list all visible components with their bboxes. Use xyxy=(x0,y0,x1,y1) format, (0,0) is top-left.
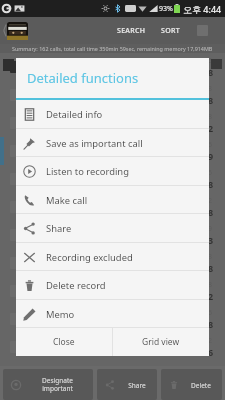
staticText: Recording excluded xyxy=(46,251,133,264)
staticText: Grid view xyxy=(142,336,180,348)
staticText: Detailed info xyxy=(46,108,103,121)
button[interactable]: Save as important call xyxy=(16,129,209,157)
staticText: 2 xyxy=(208,196,213,206)
staticText: Listen to recording xyxy=(46,165,129,178)
staticText: 8 xyxy=(208,94,214,106)
staticText: 5 xyxy=(208,168,213,178)
button[interactable]: Share xyxy=(16,214,209,243)
staticText: 2 xyxy=(208,336,213,346)
staticText: 8 xyxy=(208,318,214,330)
staticText: 93% xyxy=(159,4,173,14)
staticText: Share xyxy=(46,222,72,235)
staticText: 8 xyxy=(208,280,213,290)
button[interactable]: Make call xyxy=(16,186,209,214)
button[interactable]: Recording excluded xyxy=(16,243,209,271)
staticText: 2 xyxy=(208,122,214,134)
button[interactable]: Grid view xyxy=(113,328,209,356)
staticText: Summary: 162 calls, total call time 350m… xyxy=(12,45,213,52)
staticText: 2 xyxy=(208,290,214,302)
button[interactable]: Share xyxy=(97,369,157,400)
staticText: 6 xyxy=(208,140,213,150)
staticText: 3 xyxy=(208,252,213,262)
staticText: 6 xyxy=(208,346,214,358)
staticText: 3 xyxy=(208,234,214,246)
staticText: Make call xyxy=(46,194,88,207)
staticText: 8 xyxy=(208,112,213,122)
staticText: Memo xyxy=(46,308,75,321)
staticText: 6 xyxy=(208,56,213,66)
staticText: 8 xyxy=(208,262,214,274)
staticText: Delete xyxy=(191,381,211,390)
staticText: Designate important xyxy=(42,376,73,393)
staticText: 8 xyxy=(208,178,214,190)
staticText: 9 xyxy=(208,224,213,234)
staticText: 8 xyxy=(208,206,214,218)
button[interactable]: SORT xyxy=(159,22,182,40)
staticText: Close xyxy=(53,336,75,348)
staticText: 3 xyxy=(208,84,213,94)
staticText: Detailed functions xyxy=(27,69,139,87)
staticText: Share xyxy=(128,381,146,390)
button[interactable]: Up xyxy=(3,20,28,41)
staticText: 8 xyxy=(208,66,214,78)
button[interactable]: Close xyxy=(16,328,112,356)
staticText: 6 xyxy=(208,308,213,318)
button[interactable]: Listen to recording xyxy=(16,157,209,186)
button[interactable]: Detailed info xyxy=(16,100,209,129)
button[interactable]: Designate important xyxy=(3,369,93,400)
staticText: 오후 4:44 xyxy=(183,3,222,15)
button[interactable]: Delete record xyxy=(16,271,209,300)
button[interactable]: Delete xyxy=(161,369,222,400)
staticText: SORT xyxy=(161,26,180,36)
staticText: Save as important call xyxy=(46,137,143,150)
staticText: 9 xyxy=(208,150,214,162)
button[interactable]: SEARCH xyxy=(115,22,148,40)
button[interactable]: Memo xyxy=(16,300,209,328)
staticText: SEARCH xyxy=(117,26,146,36)
staticText: Delete record xyxy=(46,279,106,292)
